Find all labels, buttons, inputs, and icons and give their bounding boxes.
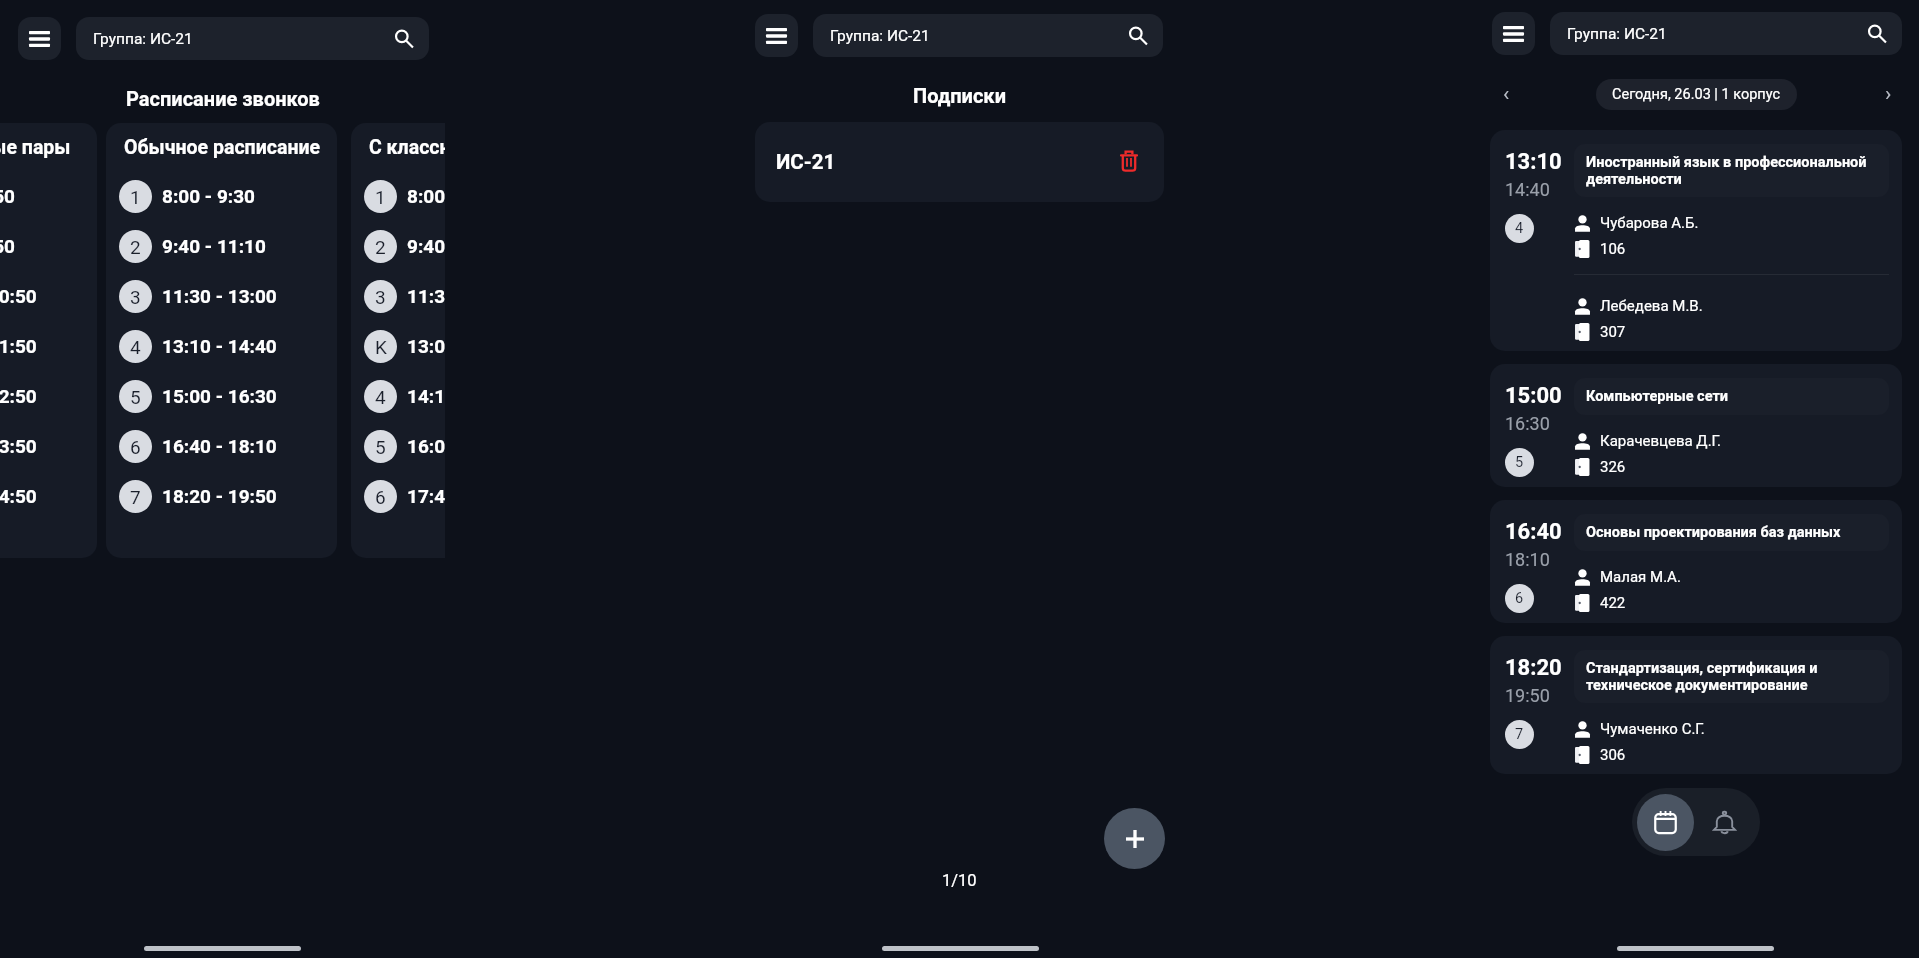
staticText: 5: [130, 386, 141, 408]
staticText: 106: [1600, 240, 1626, 258]
staticText: 422: [1600, 594, 1626, 612]
staticText: 13:10 - 14:40: [162, 335, 277, 357]
staticText: 306: [1600, 746, 1626, 764]
button[interactable]: С классным часом: [351, 123, 445, 558]
staticText: Иностранный язык в профессиональной деят…: [1586, 154, 1877, 187]
button[interactable]: Open navigation menu: [1492, 12, 1535, 55]
staticText: 5: [375, 436, 386, 458]
staticText: 13:05 - 13:45: [407, 335, 445, 357]
staticText: 7: [1515, 726, 1524, 743]
button[interactable]: 13:10: [1490, 130, 1902, 351]
staticText: 3: [130, 286, 141, 308]
button[interactable]: 18:20: [1490, 636, 1902, 774]
staticText: 1: [375, 186, 386, 208]
staticText: Стандартизация, сертификация и техническ…: [1586, 660, 1877, 693]
staticText: 1: [130, 186, 141, 208]
button[interactable]: Обычное расписание: [106, 123, 337, 558]
staticText: 6: [130, 436, 141, 458]
staticText: Чумаченко С.Г.: [1600, 720, 1705, 738]
staticText: Группа: ИС-21: [1567, 25, 1667, 43]
button[interactable]: 15:00: [1490, 364, 1902, 487]
staticText: 8:00 - 9:30: [162, 185, 255, 207]
staticText: Сегодня, 26.03 | 1 корпус: [1612, 86, 1781, 103]
staticText: 16:00 - 17:30: [407, 435, 445, 457]
staticText: 14:00 - 14:50: [0, 485, 37, 507]
staticText: ИС-21: [776, 150, 836, 174]
staticText: Подписки: [913, 84, 1006, 107]
staticText: Группа: ИС-21: [93, 30, 193, 48]
staticText: 326: [1600, 458, 1626, 476]
staticText: 6: [1515, 590, 1524, 607]
button[interactable]: Notifications: [1694, 792, 1755, 853]
staticText: 5: [1515, 454, 1524, 471]
staticText: Чубарова А.Б.: [1600, 214, 1699, 232]
staticText: 17:40 - 19:10: [407, 485, 445, 507]
staticText: 16:30: [1505, 413, 1550, 434]
staticText: Карачевцева Д.Г.: [1600, 432, 1722, 450]
staticText: Группа: ИС-21: [830, 27, 930, 45]
staticText: 16:40: [1505, 519, 1562, 545]
staticText: 4: [375, 386, 386, 408]
staticText: 14:10 - 15:40: [407, 385, 445, 407]
button[interactable]: Open navigation menu: [755, 14, 798, 57]
staticText: 14:40: [1505, 179, 1550, 200]
staticText: 12:00 - 12:50: [0, 385, 37, 407]
staticText: 7: [130, 486, 141, 508]
staticText: ‹: [1503, 82, 1510, 107]
staticText: Малая М.А.: [1600, 568, 1681, 586]
staticText: 307: [1600, 323, 1626, 341]
button[interactable]: Группа: ИС-21: [813, 14, 1163, 57]
staticText: 2: [375, 236, 386, 258]
staticText: 4: [130, 336, 141, 358]
staticText: Компьютерные сети: [1586, 388, 1729, 405]
staticText: 18:20: [1505, 655, 1562, 681]
button[interactable]: Delete subscription: [1108, 143, 1146, 181]
staticText: 6: [375, 486, 386, 508]
staticText: Обычное расписание: [124, 136, 321, 159]
staticText: 15:00 - 16:30: [162, 385, 277, 407]
staticText: 8:00 - 8:50: [0, 185, 15, 207]
staticText: 3: [375, 286, 386, 308]
staticText: Основы проектирования баз данных: [1586, 524, 1841, 541]
staticText: 19:50: [1505, 685, 1550, 706]
staticText: 13:00 - 13:50: [0, 435, 37, 457]
button[interactable]: Previous day: [1492, 80, 1520, 108]
button[interactable]: 16:40: [1490, 500, 1902, 623]
staticText: С классным часом: [369, 136, 445, 159]
staticText: 11:30 - 13:00: [162, 285, 277, 307]
button[interactable]: Open navigation menu: [18, 17, 61, 60]
staticText: K: [375, 336, 387, 358]
staticText: 4: [1515, 220, 1524, 237]
staticText: 9:40 - 11:10: [407, 235, 445, 257]
button[interactable]: ИС-21: [755, 122, 1164, 202]
staticText: 15:00: [1505, 383, 1562, 409]
staticText: 18:10: [1505, 549, 1550, 570]
staticText: Расписание звонков: [126, 87, 320, 110]
staticText: 8:00 - 9:30: [407, 185, 445, 207]
staticText: 16:40 - 18:10: [162, 435, 277, 457]
button[interactable]: Сокращённые пары: [0, 123, 97, 558]
staticText: ›: [1885, 82, 1892, 107]
staticText: 1/10: [942, 871, 977, 890]
staticText: 18:20 - 19:50: [162, 485, 277, 507]
button[interactable]: Next day: [1874, 80, 1902, 108]
button[interactable]: Сегодня, 26.03 | 1 корпус: [1596, 79, 1797, 110]
staticText: 10:00 - 10:50: [0, 285, 37, 307]
button[interactable]: Schedule: [1637, 794, 1694, 851]
staticText: 11:00 - 11:50: [0, 335, 37, 357]
button[interactable]: Группа: ИС-21: [76, 17, 429, 60]
button[interactable]: Группа: ИС-21: [1550, 12, 1902, 55]
button[interactable]: Add subscription: [1104, 808, 1165, 869]
staticText: 11:30 - 13:00: [407, 285, 445, 307]
staticText: Сокращённые пары: [0, 136, 71, 159]
staticText: 9:00 - 9:50: [0, 235, 15, 257]
staticText: 13:10: [1505, 149, 1562, 175]
staticText: 2: [130, 236, 141, 258]
staticText: 9:40 - 11:10: [162, 235, 266, 257]
staticText: Лебедева М.В.: [1600, 297, 1703, 315]
